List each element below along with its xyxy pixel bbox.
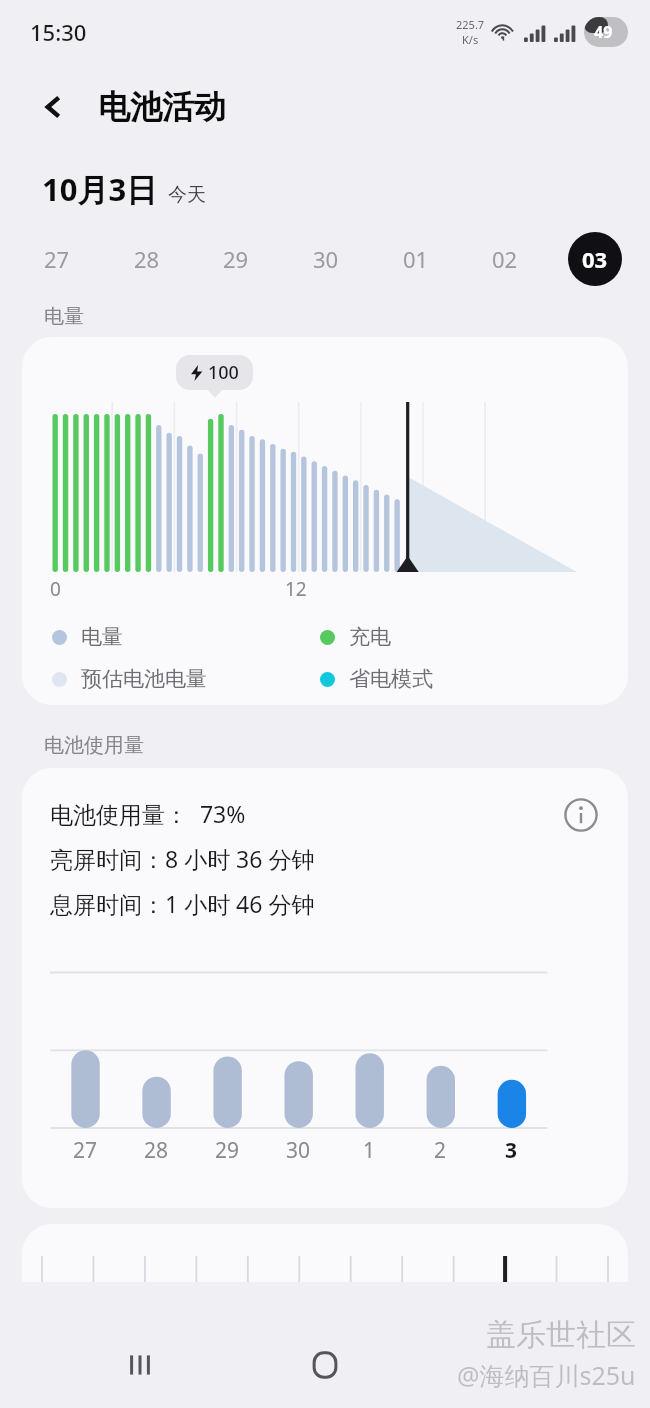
staticText: 100: [208, 360, 239, 385]
staticText: 2: [434, 1136, 447, 1165]
staticText: 03: [582, 244, 608, 274]
button[interactable]: 29: [209, 232, 263, 286]
button[interactable]: 02: [478, 232, 532, 286]
staticText: 12: [285, 576, 307, 602]
staticText: 电池使用量： 73%: [50, 798, 246, 829]
staticText: 01: [403, 244, 429, 274]
staticText: 盖乐世社区: [486, 1316, 636, 1354]
staticText: 29: [223, 244, 249, 274]
button[interactable]: 01: [389, 232, 443, 286]
staticText: 02: [492, 244, 518, 274]
staticText: 省电模式: [349, 666, 433, 692]
staticText: 预估电池电量: [81, 666, 207, 692]
button[interactable]: 30: [299, 232, 353, 286]
staticText: 息屏时间：1 小时 46 分钟: [50, 888, 315, 919]
staticText: 1: [363, 1136, 376, 1165]
staticText: 今天: [168, 183, 206, 207]
staticText: 29: [215, 1136, 240, 1165]
button[interactable]: [22, 1224, 628, 1282]
staticText: 27: [73, 1136, 98, 1165]
staticText: 电池活动: [98, 87, 226, 127]
button[interactable]: Home: [295, 1335, 355, 1395]
staticText: 28: [134, 244, 160, 274]
staticText: 10月3日: [42, 168, 158, 210]
staticText: 充电: [349, 624, 391, 650]
button[interactable]: 电池使用量： 73%: [22, 768, 628, 1208]
button[interactable]: 28: [120, 232, 174, 286]
staticText: 亮屏时间：8 小时 36 分钟: [50, 843, 315, 874]
button[interactable]: 03: [568, 232, 622, 286]
button[interactable]: 27: [30, 232, 84, 286]
staticText: 28: [144, 1136, 169, 1165]
staticText: 49: [594, 21, 613, 43]
staticText: 3: [505, 1136, 518, 1165]
button[interactable]: Info: [556, 790, 606, 840]
button[interactable]: 100: [22, 337, 628, 705]
button[interactable]: Back: [30, 83, 78, 131]
staticText: 电量: [81, 624, 123, 650]
staticText: K/s: [462, 32, 479, 47]
staticText: 27: [44, 244, 70, 274]
staticText: 电池使用量: [44, 733, 144, 758]
staticText: 电量: [44, 304, 84, 329]
staticText: 0: [50, 576, 61, 602]
staticText: @海纳百川s25u: [457, 1358, 636, 1392]
button[interactable]: Recents: [110, 1335, 170, 1395]
staticText: 30: [286, 1136, 311, 1165]
staticText: 225.7: [456, 17, 485, 32]
staticText: 30: [313, 244, 339, 274]
staticText: 15:30: [30, 17, 87, 47]
